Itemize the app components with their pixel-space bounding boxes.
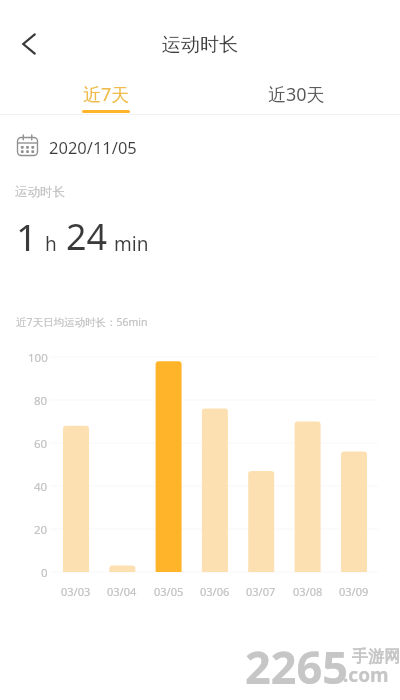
staticText: 03/09 (339, 584, 369, 599)
staticText: 运动时长 (15, 184, 65, 200)
staticText: 03/03 (61, 584, 91, 599)
button[interactable]: Back (5, 20, 53, 68)
staticText: min (114, 231, 149, 257)
staticText: 运动时长 (162, 33, 238, 57)
staticText: 20 (34, 522, 48, 538)
staticText: 近7天 (83, 82, 130, 107)
staticText: 2265 (245, 636, 348, 697)
button[interactable]: 近7天 (46, 82, 166, 116)
staticText: 近30天 (268, 82, 325, 107)
staticText: .com (343, 662, 389, 688)
staticText: 40 (34, 479, 48, 495)
staticText: 03/08 (293, 584, 323, 599)
button[interactable]: Select date (9, 128, 149, 165)
staticText: 03/07 (246, 584, 276, 599)
staticText: 03/06 (200, 584, 230, 599)
staticText: h (45, 231, 57, 257)
staticText: 24 (66, 212, 108, 261)
staticText: 手游网 (352, 647, 400, 667)
staticText: 100 (28, 350, 48, 366)
staticText: 60 (34, 436, 48, 452)
staticText: 1 (16, 211, 38, 261)
staticText: 03/05 (154, 584, 184, 599)
staticText: 03/04 (107, 584, 137, 599)
staticText: 近7天日均运动时长：56min (16, 315, 148, 329)
staticText: 2020/11/05 (49, 136, 137, 158)
staticText: 0 (41, 565, 48, 581)
staticText: 80 (34, 393, 48, 409)
button[interactable]: 近30天 (236, 82, 356, 116)
